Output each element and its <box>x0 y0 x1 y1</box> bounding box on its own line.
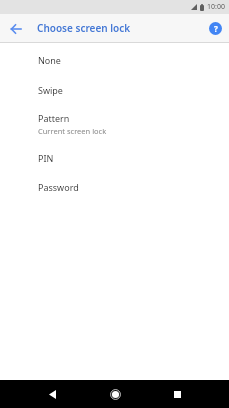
staticText: Choose screen lock <box>37 21 131 35</box>
staticText: 10:00 <box>207 2 225 12</box>
button[interactable]: None <box>0 45 229 75</box>
staticText: Swipe <box>38 84 63 96</box>
staticText: PIN <box>38 152 54 164</box>
button[interactable] <box>44 386 60 402</box>
button[interactable]: Swipe <box>0 75 229 104</box>
button[interactable]: Password <box>0 172 229 202</box>
button[interactable]: Pattern <box>0 104 229 143</box>
button[interactable]: ? <box>209 22 222 35</box>
button[interactable] <box>169 386 185 402</box>
button[interactable] <box>107 386 123 402</box>
staticText: None <box>38 54 61 66</box>
staticText: Current screen lock <box>38 126 107 136</box>
staticText: ? <box>214 23 218 34</box>
staticText: Pattern <box>38 112 70 124</box>
staticText: Password <box>38 181 79 193</box>
button[interactable]: PIN <box>0 143 229 172</box>
button[interactable] <box>8 21 23 36</box>
